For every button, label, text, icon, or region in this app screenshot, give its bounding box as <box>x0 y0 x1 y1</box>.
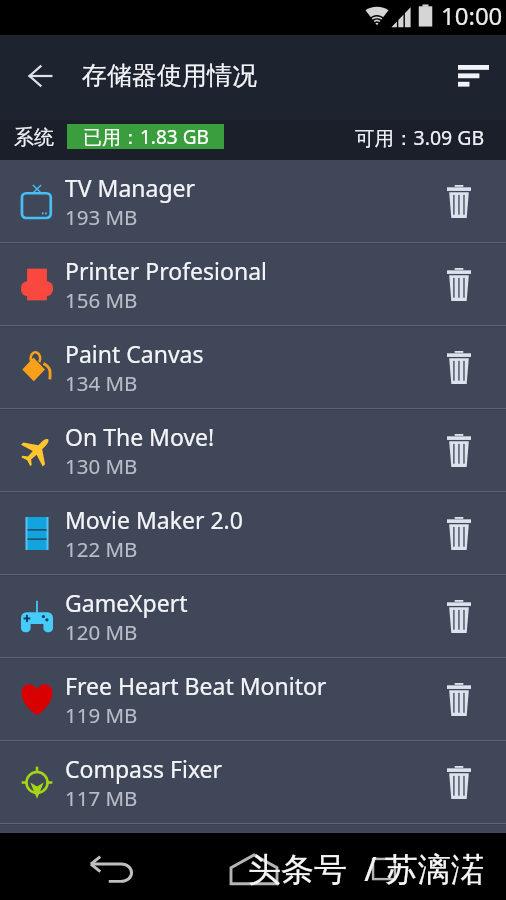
button[interactable]: Delete <box>412 244 506 325</box>
button[interactable]: Printer Profesional <box>0 244 506 325</box>
button[interactable]: Paint Canvas <box>0 327 506 408</box>
staticText: 可用：3.09 GB <box>355 124 485 151</box>
staticText: Movie Maker 2.0 <box>65 504 243 535</box>
staticText: 120 MB <box>65 618 138 646</box>
staticText: 122 MB <box>65 535 138 563</box>
staticText: Printer Profesional <box>65 255 267 286</box>
button[interactable]: Delete <box>412 576 506 657</box>
staticText: GameXpert <box>65 587 188 618</box>
staticText: Compass Fixer <box>65 753 223 784</box>
staticText: 119 MB <box>65 701 138 729</box>
staticText: 117 MB <box>65 784 138 812</box>
staticText: 156 MB <box>65 286 138 314</box>
button[interactable]: Delete <box>412 161 506 242</box>
button[interactable]: Delete <box>412 742 506 823</box>
staticText: 193 MB <box>65 203 138 231</box>
button[interactable]: Free Heart Beat Monitor <box>0 659 506 740</box>
staticText: 存储器使用情况 <box>82 60 257 91</box>
staticText: 10:00 <box>441 0 503 32</box>
button[interactable]: Sort <box>449 54 497 102</box>
staticText: 已用：1.83 GB <box>83 124 209 149</box>
button[interactable]: Compass Fixer <box>0 742 506 823</box>
staticText: 头条号 / 苏漓渃 <box>248 846 485 891</box>
button[interactable]: Recent apps <box>360 845 408 893</box>
button[interactable]: Delete <box>412 659 506 740</box>
button[interactable]: Delete <box>412 410 506 491</box>
staticText: On The Move! <box>65 421 215 452</box>
staticText: 系统 <box>14 125 54 150</box>
button[interactable]: Back <box>16 54 64 102</box>
button[interactable]: TV Manager <box>0 161 506 242</box>
staticText: Paint Canvas <box>65 338 204 369</box>
button[interactable]: On The Move! <box>0 410 506 491</box>
button[interactable]: Home <box>228 843 280 895</box>
button[interactable]: Delete <box>412 327 506 408</box>
staticText: 130 MB <box>65 452 138 480</box>
button[interactable]: Back <box>88 845 136 893</box>
button[interactable]: Movie Maker 2.0 <box>0 493 506 574</box>
button[interactable]: GameXpert <box>0 576 506 657</box>
staticText: TV Manager <box>65 172 196 203</box>
staticText: 134 MB <box>65 369 138 397</box>
staticText: Free Heart Beat Monitor <box>65 670 327 701</box>
button[interactable]: Delete <box>412 493 506 574</box>
